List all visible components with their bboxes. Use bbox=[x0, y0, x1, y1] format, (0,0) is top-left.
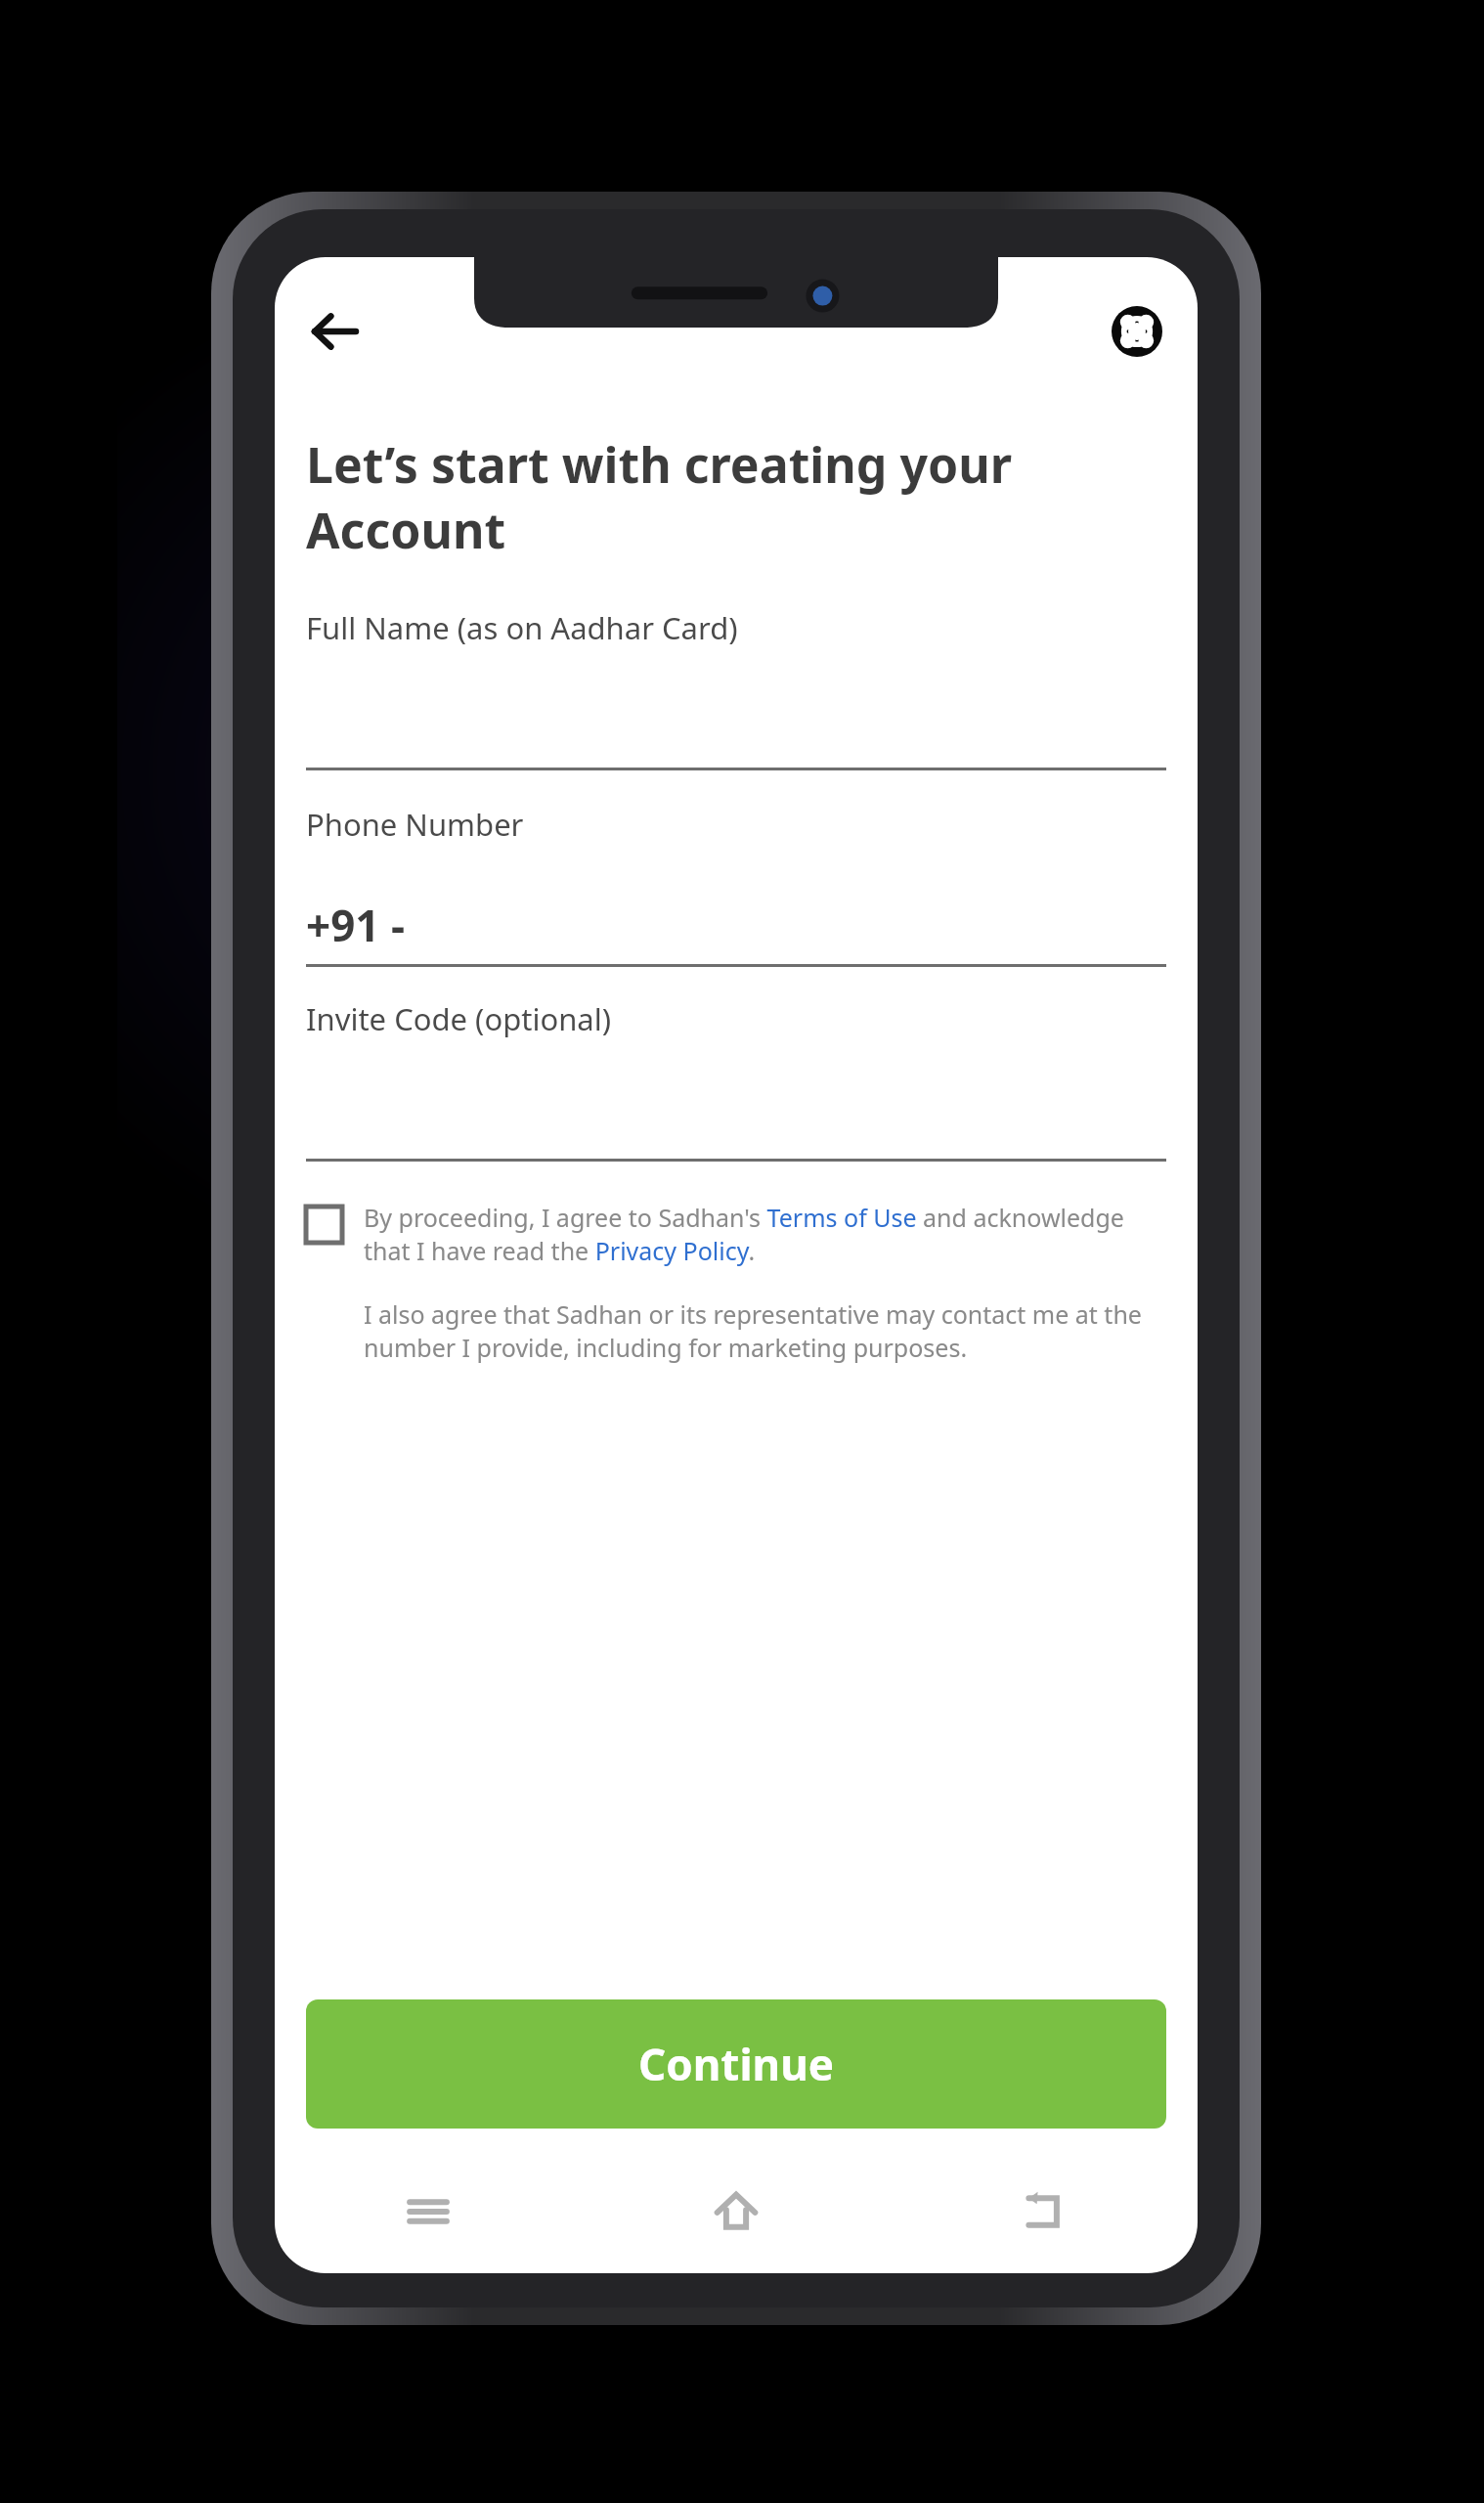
button[interactable]: Home bbox=[582, 2150, 890, 2273]
staticText: Invite Code (optional) bbox=[306, 998, 612, 1039]
button[interactable]: Continue bbox=[306, 1999, 1166, 2129]
button[interactable]: Back bbox=[890, 2150, 1198, 2273]
staticText: I also agree that Sadhan or its represen… bbox=[364, 1297, 1166, 1365]
button[interactable]: Invite Code (optional) bbox=[306, 998, 1166, 1162]
staticText: +91 - bbox=[306, 896, 406, 954]
button[interactable]: Help bbox=[1090, 285, 1184, 378]
button[interactable]: Back bbox=[288, 285, 382, 378]
staticText: Full Name (as on Aadhar Card) bbox=[306, 607, 738, 648]
staticText: Phone Number bbox=[306, 804, 524, 845]
button[interactable]: Agree to terms checkbox bbox=[306, 1201, 1166, 1268]
staticText: Continue bbox=[638, 2035, 835, 2093]
button[interactable]: Recent apps bbox=[275, 2150, 582, 2273]
staticText: Let’s start with creating your Account bbox=[306, 431, 1166, 562]
button[interactable]: Full Name (as on Aadhar Card) bbox=[306, 607, 1166, 770]
button[interactable]: Phone Number bbox=[306, 804, 1166, 967]
other: Agree to terms checkbox bbox=[306, 1207, 342, 1243]
staticText: By proceeding, I agree to Sadhan's Terms… bbox=[364, 1201, 1166, 1268]
